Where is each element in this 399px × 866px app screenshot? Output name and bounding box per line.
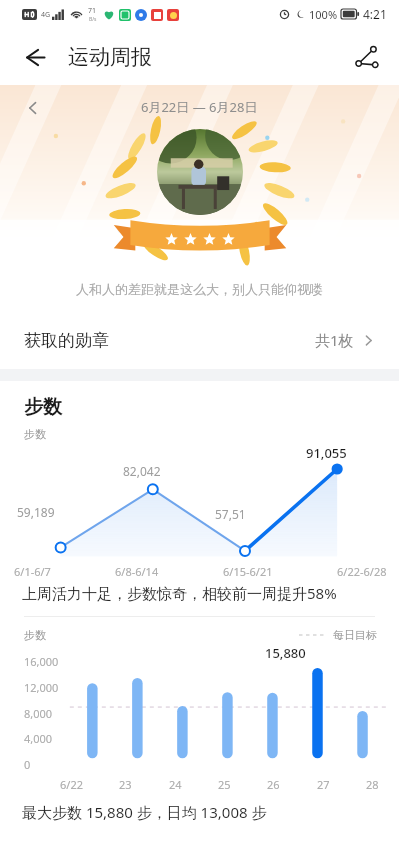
staticText: 6月22日 — 6月28日 (141, 98, 258, 116)
staticText: 运动周报 (68, 44, 152, 70)
button[interactable]: Back (10, 34, 56, 80)
staticText: 8,000 (24, 706, 53, 721)
button[interactable]: Share (343, 34, 389, 80)
staticText: 82,042 (123, 463, 161, 479)
staticText: 最大步数 15,880 步，日均 13,008 步 (22, 802, 267, 822)
staticText: 100% (309, 7, 338, 22)
staticText: 23 (119, 777, 132, 792)
staticText: 上周活力十足，步数惊奇，相较前一周提升58% (22, 583, 337, 603)
staticText: 步数 (24, 427, 46, 441)
staticText: 59,189 (17, 504, 55, 520)
staticText: 28 (366, 777, 379, 792)
staticText: 6/1-6/7 (14, 564, 51, 579)
staticText: 共1枚 (315, 330, 354, 350)
button[interactable]: 获取的勋章 (0, 311, 399, 369)
staticText: 24 (169, 777, 182, 792)
staticText: 6/22 (60, 777, 83, 792)
button[interactable]: Previous week (14, 89, 52, 127)
staticText: 57,51 (215, 506, 246, 522)
staticText: 4G (41, 10, 51, 20)
staticText: 获取的勋章 (24, 330, 109, 351)
staticText: 27 (317, 777, 330, 792)
staticText: 0 (24, 757, 31, 772)
staticText: 91,055 (306, 444, 347, 462)
staticText: 26 (267, 777, 280, 792)
staticText: 16,000 (24, 654, 59, 669)
staticText: 6/22-6/28 (337, 564, 387, 579)
staticText: 15,880 (265, 644, 306, 662)
staticText: 每日目标 (333, 628, 377, 642)
staticText: 12,000 (24, 680, 59, 695)
staticText: 人和人的差距就是这么大，别人只能仰视喽 (76, 281, 323, 297)
staticText: 4,000 (24, 731, 53, 746)
staticText: B/s (89, 16, 97, 23)
staticText: 25 (218, 777, 231, 792)
staticText: 6/8-6/14 (115, 564, 159, 579)
staticText: 步数 (24, 395, 62, 419)
staticText: 步数 (24, 628, 46, 642)
staticText: 4:21 (363, 6, 387, 22)
staticText: 6/15-6/21 (223, 564, 273, 579)
staticText: 71 (88, 6, 97, 16)
